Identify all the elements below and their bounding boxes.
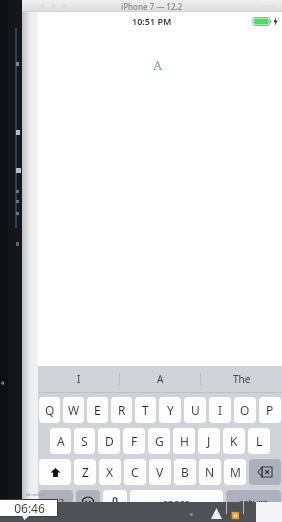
staticText: X (106, 464, 114, 480)
button[interactable]: Y (159, 397, 181, 423)
staticText: L (256, 433, 263, 449)
staticText: K (230, 433, 238, 449)
staticText: I (77, 372, 81, 386)
button[interactable]: V (149, 459, 171, 485)
staticText: Y (167, 402, 174, 418)
staticText: E (94, 402, 101, 418)
button[interactable]: D (98, 428, 120, 454)
staticText: B (181, 464, 189, 480)
button[interactable]: G (148, 428, 170, 454)
button[interactable]: P (259, 397, 281, 423)
staticText: Q (45, 402, 55, 418)
staticText: Z (82, 464, 89, 480)
staticText: G (155, 433, 164, 449)
staticText: M (230, 464, 241, 480)
staticText: def (26, 498, 32, 503)
staticText: A (57, 433, 65, 449)
button[interactable]: Q (39, 397, 60, 423)
button[interactable]: U (184, 397, 206, 423)
staticText: P (266, 402, 274, 418)
button[interactable]: T (135, 397, 156, 423)
staticText: V (156, 464, 164, 480)
staticText: ## method (26, 492, 45, 497)
staticText: C (131, 464, 139, 480)
staticText: 123 (47, 496, 65, 510)
staticText: 06:46 (14, 500, 45, 516)
staticText: T (142, 402, 149, 418)
button[interactable]: E (87, 397, 108, 423)
staticText: H (180, 433, 189, 449)
staticText: D (105, 433, 114, 449)
staticText: I (218, 402, 223, 418)
staticText: O (240, 402, 250, 418)
button[interactable]: Backspace (249, 459, 281, 485)
staticText: iPhone 7 — 12.2 (121, 1, 183, 12)
staticText: S (81, 433, 88, 449)
button[interactable]: H (173, 428, 195, 454)
button[interactable]: R (111, 397, 132, 423)
button[interactable]: B (174, 459, 196, 485)
button[interactable]: J (198, 428, 220, 454)
button[interactable]: Dictation (103, 490, 127, 516)
staticText: W (68, 402, 80, 418)
button[interactable]: C (124, 459, 146, 485)
button[interactable]: S (74, 428, 95, 454)
staticText: The (233, 372, 251, 386)
staticText: F (131, 433, 138, 449)
button[interactable]: M (224, 459, 246, 485)
staticText: N (205, 464, 215, 480)
staticText: ⏸ (231, 512, 240, 520)
button[interactable]: space (130, 490, 223, 516)
staticText: space (163, 496, 190, 510)
button[interactable]: K (223, 428, 245, 454)
staticText: return (239, 496, 269, 510)
staticText: U (191, 402, 200, 418)
staticText: 10:51 PM (132, 15, 172, 27)
staticText: A (157, 372, 164, 386)
button[interactable]: N (199, 459, 221, 485)
staticText: « (1, 378, 5, 388)
button[interactable]: The (201, 366, 282, 392)
button[interactable]: return (226, 490, 281, 516)
button[interactable]: W (63, 397, 84, 423)
button[interactable]: L (248, 428, 270, 454)
button[interactable]: Emoji (76, 490, 100, 516)
button[interactable]: Z (74, 459, 96, 485)
staticText: J (207, 433, 211, 449)
button[interactable]: 123 (39, 490, 73, 516)
staticText: R (118, 402, 126, 418)
button[interactable]: I (38, 366, 120, 392)
button[interactable]: F (123, 428, 145, 454)
button[interactable]: A (50, 428, 71, 454)
button[interactable]: O (234, 397, 256, 423)
button[interactable]: Shift (39, 459, 71, 485)
button[interactable]: A (120, 366, 201, 392)
button[interactable]: I (209, 397, 231, 423)
staticText: A (153, 56, 163, 74)
button[interactable]: X (99, 459, 121, 485)
